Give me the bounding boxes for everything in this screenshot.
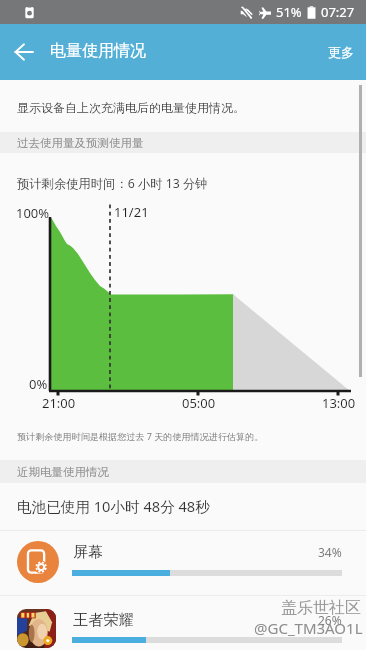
staticText: 预计剩余使用时间是根据您过去 7 天的使用情况进行估算的。: [17, 430, 264, 442]
staticText: 07:27: [321, 3, 355, 21]
staticText: 26%: [318, 612, 342, 628]
button[interactable]: 更多: [312, 24, 366, 80]
staticText: 显示设备自上次充满电后的电量使用情况。: [17, 100, 245, 115]
staticText: 电池已使用 10小时 48分 48秒: [17, 496, 210, 516]
staticText: 王者荣耀: [73, 610, 134, 629]
staticText: 过去使用量及预测使用量: [17, 136, 144, 150]
staticText: 100%: [16, 204, 50, 222]
staticText: 13:00: [322, 394, 356, 412]
staticText: 近期电量使用情况: [17, 465, 109, 479]
staticText: 51%: [276, 3, 302, 21]
staticText: 预计剩余使用时间：6 小时 13 分钟: [17, 175, 208, 192]
staticText: 屏幕: [73, 542, 104, 561]
staticText: @GC_TM3AO1L: [254, 618, 363, 638]
staticText: 电量使用情况: [50, 41, 146, 61]
staticText: 34%: [318, 544, 342, 560]
staticText: 05:00: [182, 394, 216, 412]
staticText: 21:00: [42, 394, 76, 412]
staticText: 0%: [29, 375, 48, 393]
button[interactable]: 王者荣耀: [0, 595, 366, 650]
staticText: 更多: [328, 44, 354, 60]
button[interactable]: 屏幕: [0, 530, 366, 594]
staticText: 11/21: [114, 203, 149, 221]
staticText: 盖乐世社区: [281, 598, 361, 618]
button[interactable]: 返回: [4, 32, 44, 72]
